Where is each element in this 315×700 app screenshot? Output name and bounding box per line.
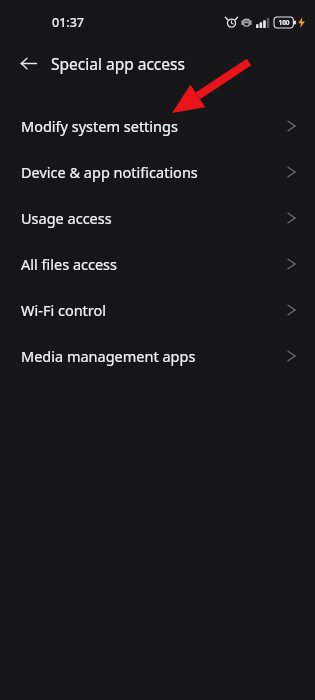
button[interactable]: Device & app notifications (0, 149, 315, 195)
staticText: Media management apps (21, 346, 287, 366)
staticText: Usage access (21, 208, 287, 228)
staticText: Wi-Fi control (21, 300, 287, 320)
button[interactable]: Usage access (0, 195, 315, 241)
button[interactable]: Back (12, 47, 44, 79)
staticText: Special app access (51, 53, 185, 74)
staticText: 01:37 (52, 14, 85, 31)
staticText: Device & app notifications (21, 162, 287, 182)
staticText: Modify system settings (21, 116, 287, 136)
button[interactable]: Modify system settings (0, 103, 315, 149)
staticText: 100 (278, 18, 290, 27)
staticText: All files access (21, 254, 287, 274)
button[interactable]: Wi-Fi control (0, 287, 315, 333)
button[interactable]: All files access (0, 241, 315, 287)
button[interactable]: Media management apps (0, 333, 315, 379)
